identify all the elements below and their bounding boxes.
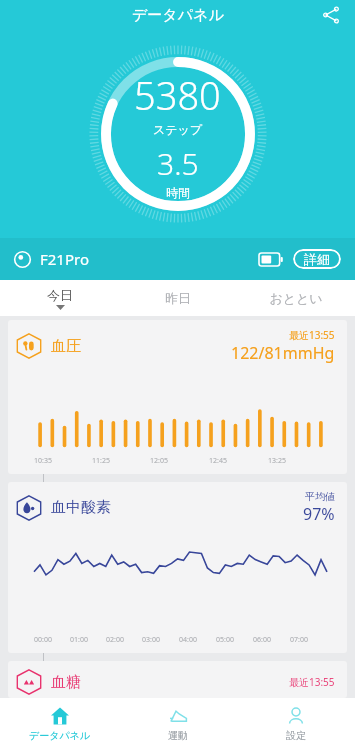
button[interactable]: 血圧	[8, 320, 347, 474]
staticText: 10:35	[34, 456, 52, 466]
staticText: 最近13:55	[289, 328, 335, 342]
button[interactable]: データパネル	[0, 698, 119, 750]
staticText: 07:00	[290, 635, 308, 645]
staticText: 平均値	[305, 490, 335, 503]
staticText: 02:00	[106, 635, 124, 645]
staticText: 運動	[168, 729, 188, 742]
staticText: 03:00	[142, 635, 160, 645]
button[interactable]: Share	[317, 1, 345, 29]
staticText: 時間	[166, 185, 190, 200]
staticText: データパネル	[132, 6, 224, 25]
staticText: 00:00	[34, 635, 52, 645]
staticText: 11:25	[92, 456, 110, 466]
staticText: 97%	[303, 503, 335, 525]
staticText: 今日	[47, 287, 73, 303]
button[interactable]: 昨日	[119, 280, 237, 316]
button[interactable]: 血糖	[8, 661, 347, 698]
staticText: 3.5	[157, 143, 199, 184]
staticText: 13:25	[268, 456, 286, 466]
button[interactable]: 今日	[0, 280, 119, 316]
staticText: 12:05	[150, 456, 168, 466]
staticText: データパネル	[29, 729, 91, 742]
staticText: 05:00	[216, 635, 234, 645]
button[interactable]: おととい	[237, 280, 355, 316]
staticText: 血中酸素	[51, 498, 111, 517]
staticText: 設定	[286, 729, 306, 742]
staticText: 06:00	[253, 635, 271, 645]
staticText: 122/81mmHg	[231, 342, 335, 364]
staticText: 血圧	[51, 337, 81, 356]
staticText: おととい	[269, 290, 323, 306]
staticText: 04:00	[179, 635, 197, 645]
staticText: 血糖	[51, 673, 81, 692]
staticText: F21Pro	[40, 249, 89, 269]
staticText: 詳細	[304, 251, 330, 267]
staticText: 12:45	[209, 456, 227, 466]
staticText: 最近13:55	[289, 675, 335, 689]
button[interactable]: 詳細	[293, 249, 341, 269]
staticText: 01:00	[70, 635, 88, 645]
button[interactable]: 運動	[119, 698, 237, 750]
button[interactable]: F21Pro	[0, 238, 355, 280]
staticText: 5380	[134, 69, 221, 121]
button[interactable]: 設定	[237, 698, 355, 750]
staticText: 昨日	[165, 290, 191, 306]
button[interactable]: 血中酸素	[8, 482, 347, 653]
staticText: ステップ	[153, 122, 203, 137]
